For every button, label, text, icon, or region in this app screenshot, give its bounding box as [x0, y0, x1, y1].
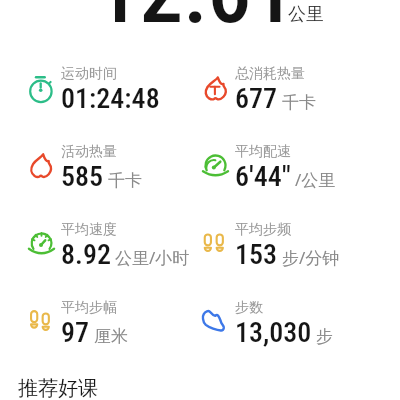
- button[interactable]: 总消耗热量: [235, 65, 316, 116]
- staticText: 6'44": [235, 160, 291, 193]
- staticText: 千卡: [108, 170, 142, 191]
- button[interactable]: 平均配速: [235, 143, 336, 194]
- staticText: 585: [61, 160, 104, 193]
- staticText: 13,030: [235, 316, 312, 349]
- staticText: 公里: [288, 3, 324, 26]
- staticText: /公里: [295, 168, 336, 191]
- staticText: 平均步频: [235, 221, 291, 239]
- staticText: 01:24:48: [61, 82, 160, 115]
- button[interactable]: 步数: [235, 299, 333, 350]
- staticText: 千卡: [282, 92, 316, 113]
- staticText: 12.61: [96, 0, 295, 43]
- button[interactable]: 平均速度: [61, 221, 190, 272]
- button[interactable]: 运动时间: [61, 65, 160, 116]
- staticText: 步/分钟: [282, 246, 340, 269]
- button[interactable]: 活动热量: [61, 143, 142, 194]
- staticText: 153: [235, 238, 278, 271]
- staticText: 平均速度: [61, 221, 117, 239]
- button[interactable]: 平均步幅: [61, 299, 128, 350]
- staticText: 平均步幅: [61, 299, 117, 317]
- staticText: 步数: [235, 299, 263, 317]
- staticText: 步: [316, 326, 333, 347]
- staticText: 运动时间: [61, 65, 117, 83]
- staticText: 平均配速: [235, 143, 291, 161]
- staticText: 97: [61, 316, 90, 349]
- staticText: 推荐好课: [18, 376, 98, 400]
- staticText: 公里/小时: [115, 246, 190, 269]
- staticText: 活动热量: [61, 143, 117, 161]
- button[interactable]: 平均步频: [235, 221, 340, 272]
- staticText: 厘米: [94, 326, 128, 347]
- staticText: 677: [235, 82, 278, 115]
- staticText: 总消耗热量: [235, 65, 305, 83]
- staticText: 8.92: [61, 238, 111, 271]
